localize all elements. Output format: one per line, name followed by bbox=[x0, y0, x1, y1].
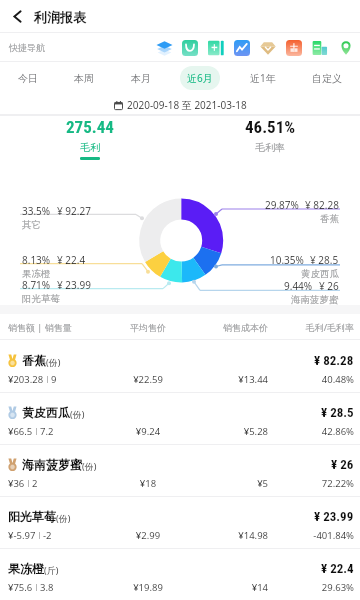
staticText: 9 bbox=[51, 373, 57, 386]
staticText: 毛利/毛利率 bbox=[268, 321, 354, 333]
staticText: ¥ 26 bbox=[319, 279, 339, 293]
staticText: 29.63% bbox=[268, 581, 354, 594]
button[interactable]: 黄皮西瓜 bbox=[0, 393, 360, 445]
button[interactable]: Trend bbox=[229, 33, 255, 62]
staticText: 33.5% bbox=[22, 204, 51, 218]
staticText: 275.44 bbox=[66, 117, 114, 137]
button[interactable]: Layers bbox=[151, 33, 177, 62]
button[interactable]: 本月 bbox=[124, 66, 158, 90]
staticText: ¥-5.97 bbox=[8, 529, 36, 542]
staticText: 8.71% bbox=[22, 278, 51, 292]
button[interactable]: 2020-09-18 至 2021-03-18 bbox=[110, 98, 251, 112]
staticText: ¥ 82.28 bbox=[314, 353, 354, 368]
staticText: ¥ 28.5 bbox=[321, 405, 354, 420]
staticText: ¥ 23.99 bbox=[57, 278, 91, 292]
staticText: 29.87% bbox=[265, 198, 299, 212]
staticText: 本月 bbox=[131, 72, 151, 85]
staticText: 黄皮西瓜 bbox=[22, 405, 70, 420]
staticText: (斤) bbox=[44, 564, 59, 576]
staticText: 46.51% bbox=[245, 117, 296, 137]
staticText: ¥36 bbox=[8, 477, 25, 490]
staticText: -2 bbox=[43, 529, 52, 542]
staticText: 7.2 bbox=[40, 425, 54, 438]
staticText: ¥ 26 bbox=[331, 457, 354, 472]
staticText: 果冻橙 bbox=[22, 268, 51, 280]
button[interactable]: 近1年 bbox=[243, 66, 283, 90]
staticText: ¥18 bbox=[108, 477, 188, 490]
staticText: 近6月 bbox=[187, 71, 213, 85]
button[interactable]: 275.44 bbox=[0, 116, 180, 164]
staticText: 平均售价 bbox=[108, 322, 188, 333]
staticText: ¥ 22.4 bbox=[321, 561, 354, 576]
staticText: ¥22.59 bbox=[108, 373, 188, 386]
staticText: (份) bbox=[82, 460, 97, 472]
staticText: ¥ 82.28 bbox=[305, 198, 339, 212]
button[interactable]: Shop bbox=[177, 33, 203, 62]
button[interactable]: Back bbox=[0, 0, 34, 33]
staticText: (份) bbox=[46, 356, 61, 368]
staticText: 自定义 bbox=[312, 72, 342, 85]
staticText: 利润报表 bbox=[34, 9, 86, 25]
staticText: 果冻橙 bbox=[8, 561, 44, 576]
staticText: 9.44% bbox=[284, 279, 313, 293]
staticText: 黄皮西瓜 bbox=[301, 268, 339, 280]
staticText: ¥66.5 bbox=[8, 425, 33, 438]
staticText: ¥2.99 bbox=[108, 529, 188, 542]
staticText: 本周 bbox=[74, 72, 94, 85]
staticText: ¥14.98 bbox=[188, 529, 268, 542]
staticText: 2020-09-18 至 2021-03-18 bbox=[127, 98, 247, 112]
staticText: 近1年 bbox=[250, 71, 276, 85]
staticText: 毛利率 bbox=[255, 141, 285, 154]
staticText: 42.86% bbox=[268, 425, 354, 438]
button[interactable]: 今日 bbox=[11, 66, 45, 90]
button[interactable]: Ledger bbox=[203, 33, 229, 62]
staticText: 72.22% bbox=[268, 477, 354, 490]
staticText: 快捷导航 bbox=[9, 42, 45, 53]
staticText: ¥ 92.27 bbox=[57, 204, 91, 218]
staticText: (份) bbox=[70, 408, 85, 420]
staticText: 10.35% bbox=[270, 253, 304, 267]
staticText: (份) bbox=[56, 512, 71, 524]
staticText: ¥19.89 bbox=[108, 581, 188, 594]
staticText: ¥14 bbox=[188, 581, 268, 594]
staticText: 毛利 bbox=[80, 141, 100, 154]
staticText: ¥5 bbox=[188, 477, 268, 490]
staticText: 3.8 bbox=[40, 581, 54, 594]
staticText: 40.48% bbox=[268, 373, 354, 386]
staticText: ¥5.28 bbox=[188, 425, 268, 438]
staticText: ¥203.28 bbox=[8, 373, 44, 386]
staticText: 销售额 | 销售量 bbox=[8, 321, 108, 333]
staticText: 海南菠萝蜜 bbox=[22, 457, 82, 472]
staticText: ¥75.6 bbox=[8, 581, 33, 594]
staticText: 香蕉 bbox=[22, 353, 46, 368]
staticText: 今日 bbox=[18, 72, 38, 85]
staticText: 其它 bbox=[22, 219, 41, 231]
button[interactable]: Store bbox=[281, 33, 307, 62]
staticText: 8.13% bbox=[22, 253, 51, 267]
button[interactable]: 海南菠萝蜜 bbox=[0, 445, 360, 497]
button[interactable]: 香蕉 bbox=[0, 341, 360, 393]
staticText: ¥9.24 bbox=[108, 425, 188, 438]
button[interactable]: Member bbox=[255, 33, 281, 62]
button[interactable]: 近6月 bbox=[180, 66, 220, 90]
button[interactable]: 自定义 bbox=[305, 66, 349, 90]
staticText: 海南菠萝蜜 bbox=[291, 294, 339, 306]
staticText: 香蕉 bbox=[320, 213, 339, 225]
staticText: 2 bbox=[32, 477, 38, 490]
staticText: 阳光草莓 bbox=[22, 293, 60, 305]
staticText: 销售成本价 bbox=[188, 322, 268, 333]
staticText: -401.84% bbox=[268, 529, 354, 542]
button[interactable]: Location bbox=[333, 33, 359, 62]
button[interactable]: 果冻橙 bbox=[0, 549, 360, 600]
staticText: ¥ 28.5 bbox=[310, 253, 339, 267]
button[interactable]: 本周 bbox=[67, 66, 101, 90]
button[interactable]: Report bbox=[307, 33, 333, 62]
staticText: 阳光草莓 bbox=[8, 509, 56, 524]
staticText: ¥ 23.99 bbox=[314, 509, 354, 524]
button[interactable]: 阳光草莓 bbox=[0, 497, 360, 549]
staticText: ¥ 22.4 bbox=[57, 253, 86, 267]
button[interactable]: 46.51% bbox=[180, 116, 360, 164]
staticText: ¥13.44 bbox=[188, 373, 268, 386]
